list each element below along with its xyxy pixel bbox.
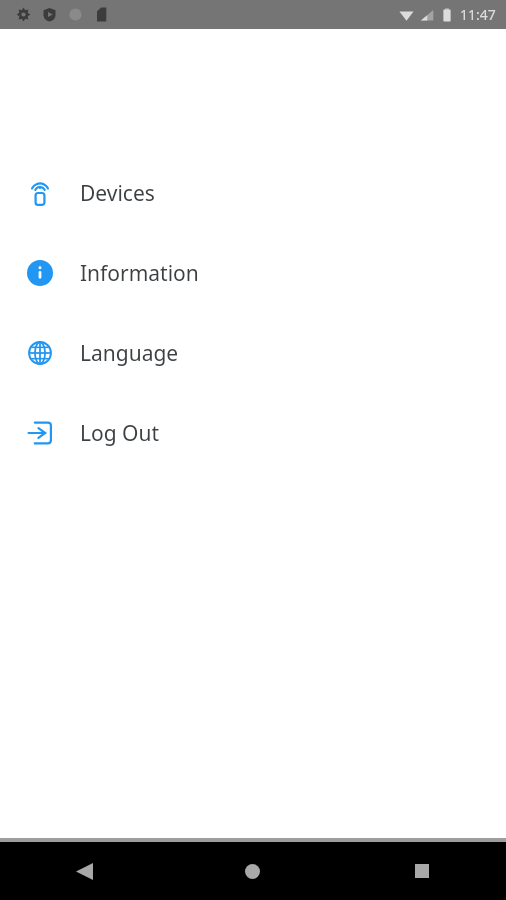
button[interactable]: Language — [0, 313, 506, 393]
staticText: 11:47 — [460, 5, 496, 24]
button[interactable]: Home — [168, 842, 337, 900]
button[interactable]: Recent apps — [337, 842, 506, 900]
staticText: Log Out — [80, 419, 160, 448]
button[interactable]: Log Out — [0, 393, 506, 473]
button[interactable]: Back — [0, 842, 168, 900]
staticText: Devices — [80, 179, 155, 208]
button[interactable]: Information — [0, 233, 506, 313]
button[interactable]: Devices — [0, 153, 506, 233]
staticText: Information — [80, 259, 199, 288]
staticText: Language — [80, 339, 179, 368]
